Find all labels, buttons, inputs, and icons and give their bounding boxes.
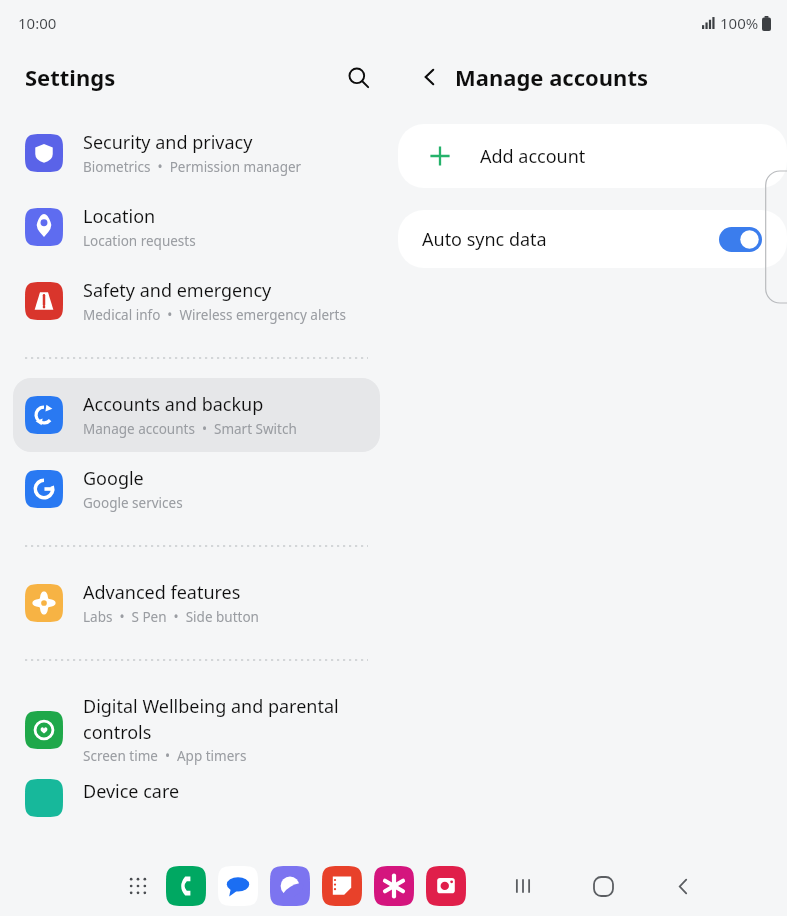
button[interactable]: Add account bbox=[398, 124, 787, 188]
button[interactable]: Search bbox=[336, 55, 380, 99]
staticText: Digital Wellbeing and parental controls bbox=[83, 694, 339, 744]
staticText: Labs • S Pen • Side button bbox=[83, 608, 259, 626]
button[interactable]: Google bbox=[13, 452, 380, 526]
button[interactable]: Advanced features bbox=[13, 566, 380, 640]
staticText: Google bbox=[83, 466, 144, 491]
staticText: 10:00 bbox=[18, 13, 57, 33]
button[interactable]: Location bbox=[13, 190, 380, 264]
staticText: Accounts and backup bbox=[83, 392, 264, 417]
staticText: Biometrics • Permission manager bbox=[83, 158, 302, 176]
staticText: Advanced features bbox=[83, 580, 241, 605]
button[interactable]: Back bbox=[408, 55, 452, 99]
staticText: 100% bbox=[720, 13, 759, 33]
button[interactable]: Phone bbox=[166, 866, 206, 906]
staticText: Add account bbox=[480, 144, 586, 169]
button[interactable]: Security and privacy bbox=[13, 116, 380, 190]
button[interactable]: Device care bbox=[25, 779, 368, 803]
button[interactable]: Back bbox=[657, 860, 709, 912]
staticText: Google services bbox=[83, 494, 183, 512]
staticText: Manage accounts bbox=[455, 62, 648, 92]
staticText: Medical info • Wireless emergency alerts bbox=[83, 306, 346, 324]
button[interactable]: Auto sync data bbox=[398, 210, 787, 268]
button[interactable]: All apps bbox=[118, 866, 158, 906]
button[interactable]: Gallery bbox=[374, 866, 414, 906]
staticText: Screen time • App timers bbox=[83, 747, 247, 765]
button[interactable]: Digital Wellbeing and parental controls bbox=[13, 680, 380, 779]
button[interactable]: Samsung Notes bbox=[322, 866, 362, 906]
staticText: Device care bbox=[83, 779, 180, 803]
button[interactable]: Internet bbox=[270, 866, 310, 906]
staticText: Security and privacy bbox=[83, 130, 253, 155]
button[interactable]: Messages bbox=[218, 866, 258, 906]
staticText: Location bbox=[83, 204, 156, 229]
button[interactable]: Recents bbox=[497, 860, 549, 912]
button[interactable]: Safety and emergency bbox=[13, 264, 380, 338]
staticText: Manage accounts • Smart Switch bbox=[83, 420, 297, 438]
staticText: Auto sync data bbox=[422, 227, 719, 252]
staticText: Location requests bbox=[83, 232, 196, 250]
button[interactable]: Home bbox=[577, 860, 629, 912]
staticText: Settings bbox=[25, 62, 116, 92]
button[interactable]: Camera bbox=[426, 866, 466, 906]
staticText: Safety and emergency bbox=[83, 278, 272, 303]
button[interactable]: Accounts and backup bbox=[13, 378, 380, 452]
